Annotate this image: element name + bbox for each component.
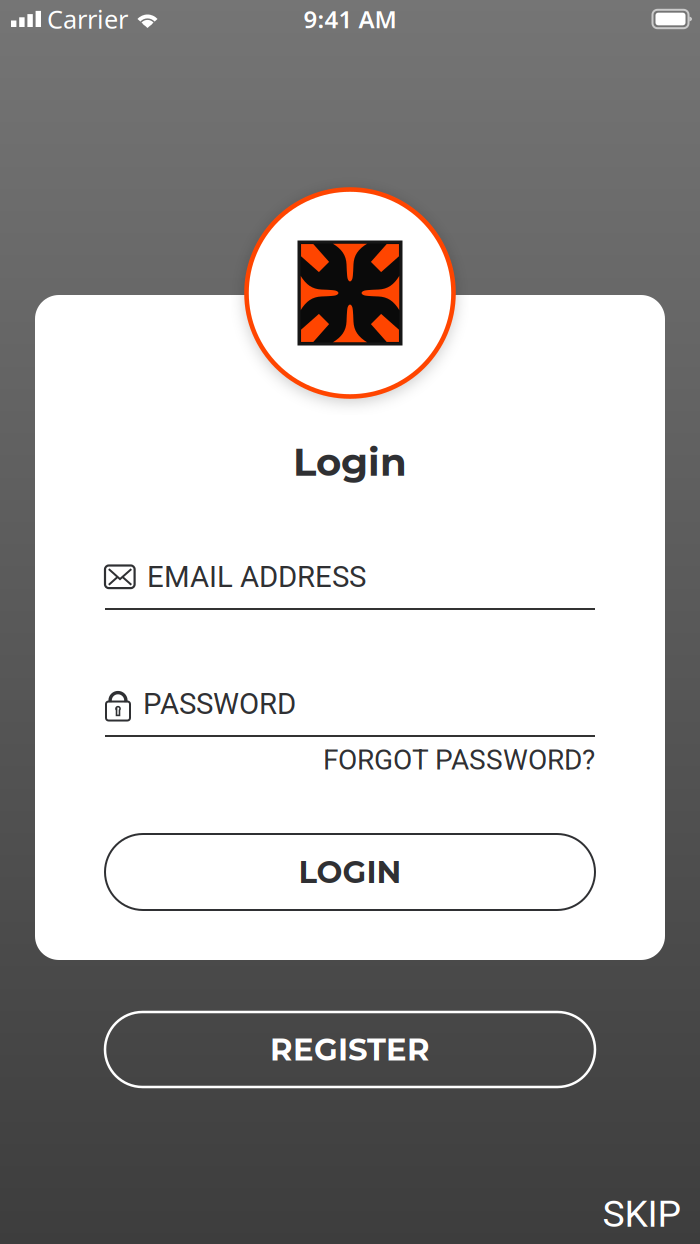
button[interactable]: LOGIN	[105, 834, 595, 910]
staticText: FORGOT PASSWORD?	[323, 744, 595, 776]
button[interactable]: FORGOT PASSWORD?	[105, 743, 595, 777]
staticText: 9:41 AM	[303, 3, 396, 35]
staticText: EMAIL ADDRESS	[147, 560, 366, 594]
staticText: Carrier	[47, 2, 128, 36]
staticText: PASSWORD	[143, 687, 296, 721]
staticText: Login	[293, 438, 407, 485]
staticText: LOGIN	[298, 853, 401, 891]
button[interactable]: SKIP	[587, 1187, 697, 1241]
staticText: SKIP	[602, 1192, 681, 1236]
staticText: REGISTER	[270, 1031, 430, 1068]
button[interactable]: REGISTER	[105, 1012, 595, 1087]
